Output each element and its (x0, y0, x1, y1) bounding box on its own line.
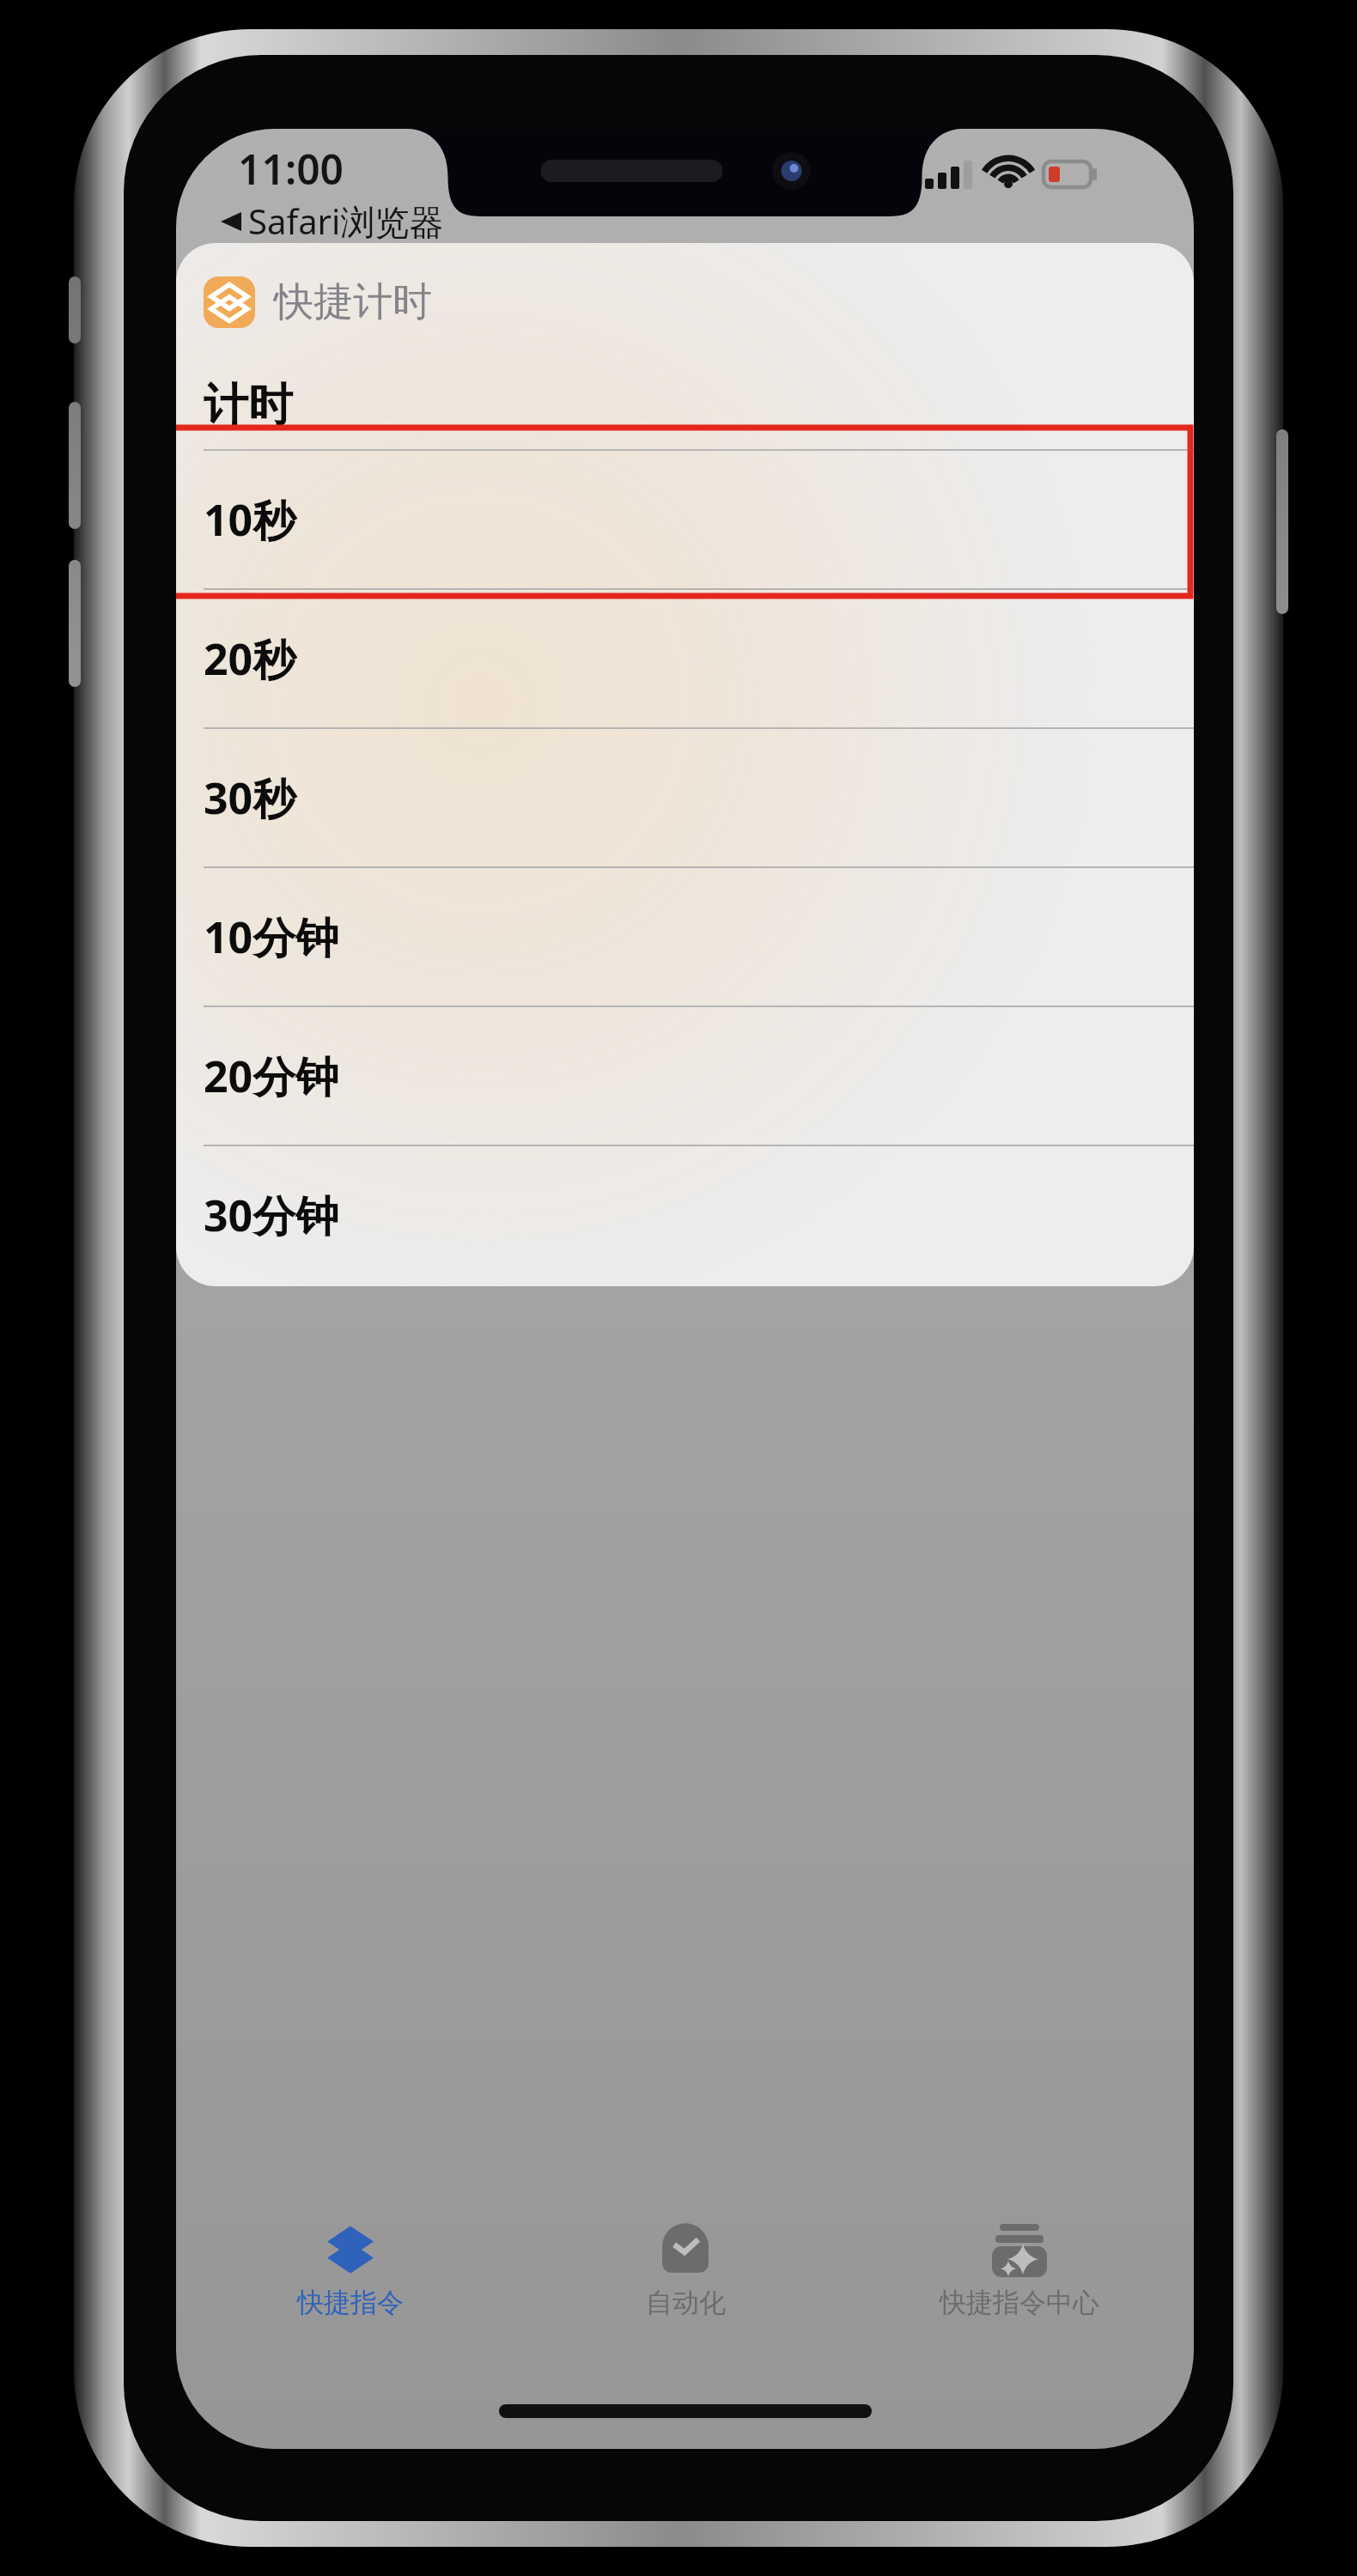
staticText: 20分钟 (204, 1047, 339, 1105)
staticText: 快捷指令 (297, 2286, 404, 2319)
staticText: 快捷指令中心 (940, 2286, 1099, 2319)
button[interactable]: Automation (525, 2217, 846, 2319)
button[interactable]: Gallery (859, 2217, 1180, 2319)
button[interactable]: 10分钟 (176, 866, 1194, 1005)
button[interactable]: 30秒 (176, 727, 1194, 866)
staticText: Safari浏览器 (248, 197, 444, 245)
button[interactable]: Safari浏览器 (221, 197, 444, 245)
button[interactable]: Shortcuts (190, 2217, 511, 2319)
staticText: 自动化 (646, 2286, 726, 2319)
staticText: 10秒 (204, 490, 296, 549)
staticText: 计时 (204, 377, 293, 434)
button[interactable]: 20分钟 (176, 1005, 1194, 1145)
staticText: 快捷计时 (274, 277, 432, 327)
staticText: 30分钟 (204, 1186, 339, 1244)
button[interactable]: 30分钟 (176, 1145, 1194, 1284)
button[interactable]: 20秒 (176, 588, 1194, 727)
staticText: 10分钟 (204, 908, 339, 966)
staticText: 11:00 (238, 141, 344, 197)
button[interactable]: 10秒 (176, 449, 1194, 588)
staticText: 20秒 (204, 629, 296, 688)
staticText: 30秒 (204, 769, 296, 827)
